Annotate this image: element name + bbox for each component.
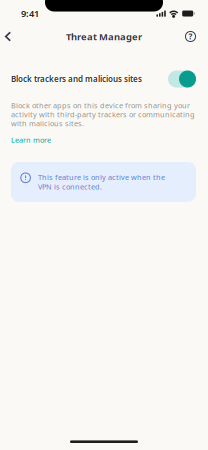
button[interactable]: Back [0,26,20,46]
staticText: ? [188,31,192,42]
button[interactable]: Block trackers and malicious sites [168,70,196,87]
staticText: Block trackers and malicious sites [11,74,142,84]
staticText: Block other apps on this device from sha… [11,100,195,128]
staticText: Threat Manager [66,30,142,43]
button[interactable]: Help [183,26,208,46]
staticText: This feature is only active when the VPN… [38,172,165,192]
staticText: Learn more [11,135,51,145]
button[interactable]: Learn more [0,128,57,147]
staticText: 9:41 [21,7,39,20]
